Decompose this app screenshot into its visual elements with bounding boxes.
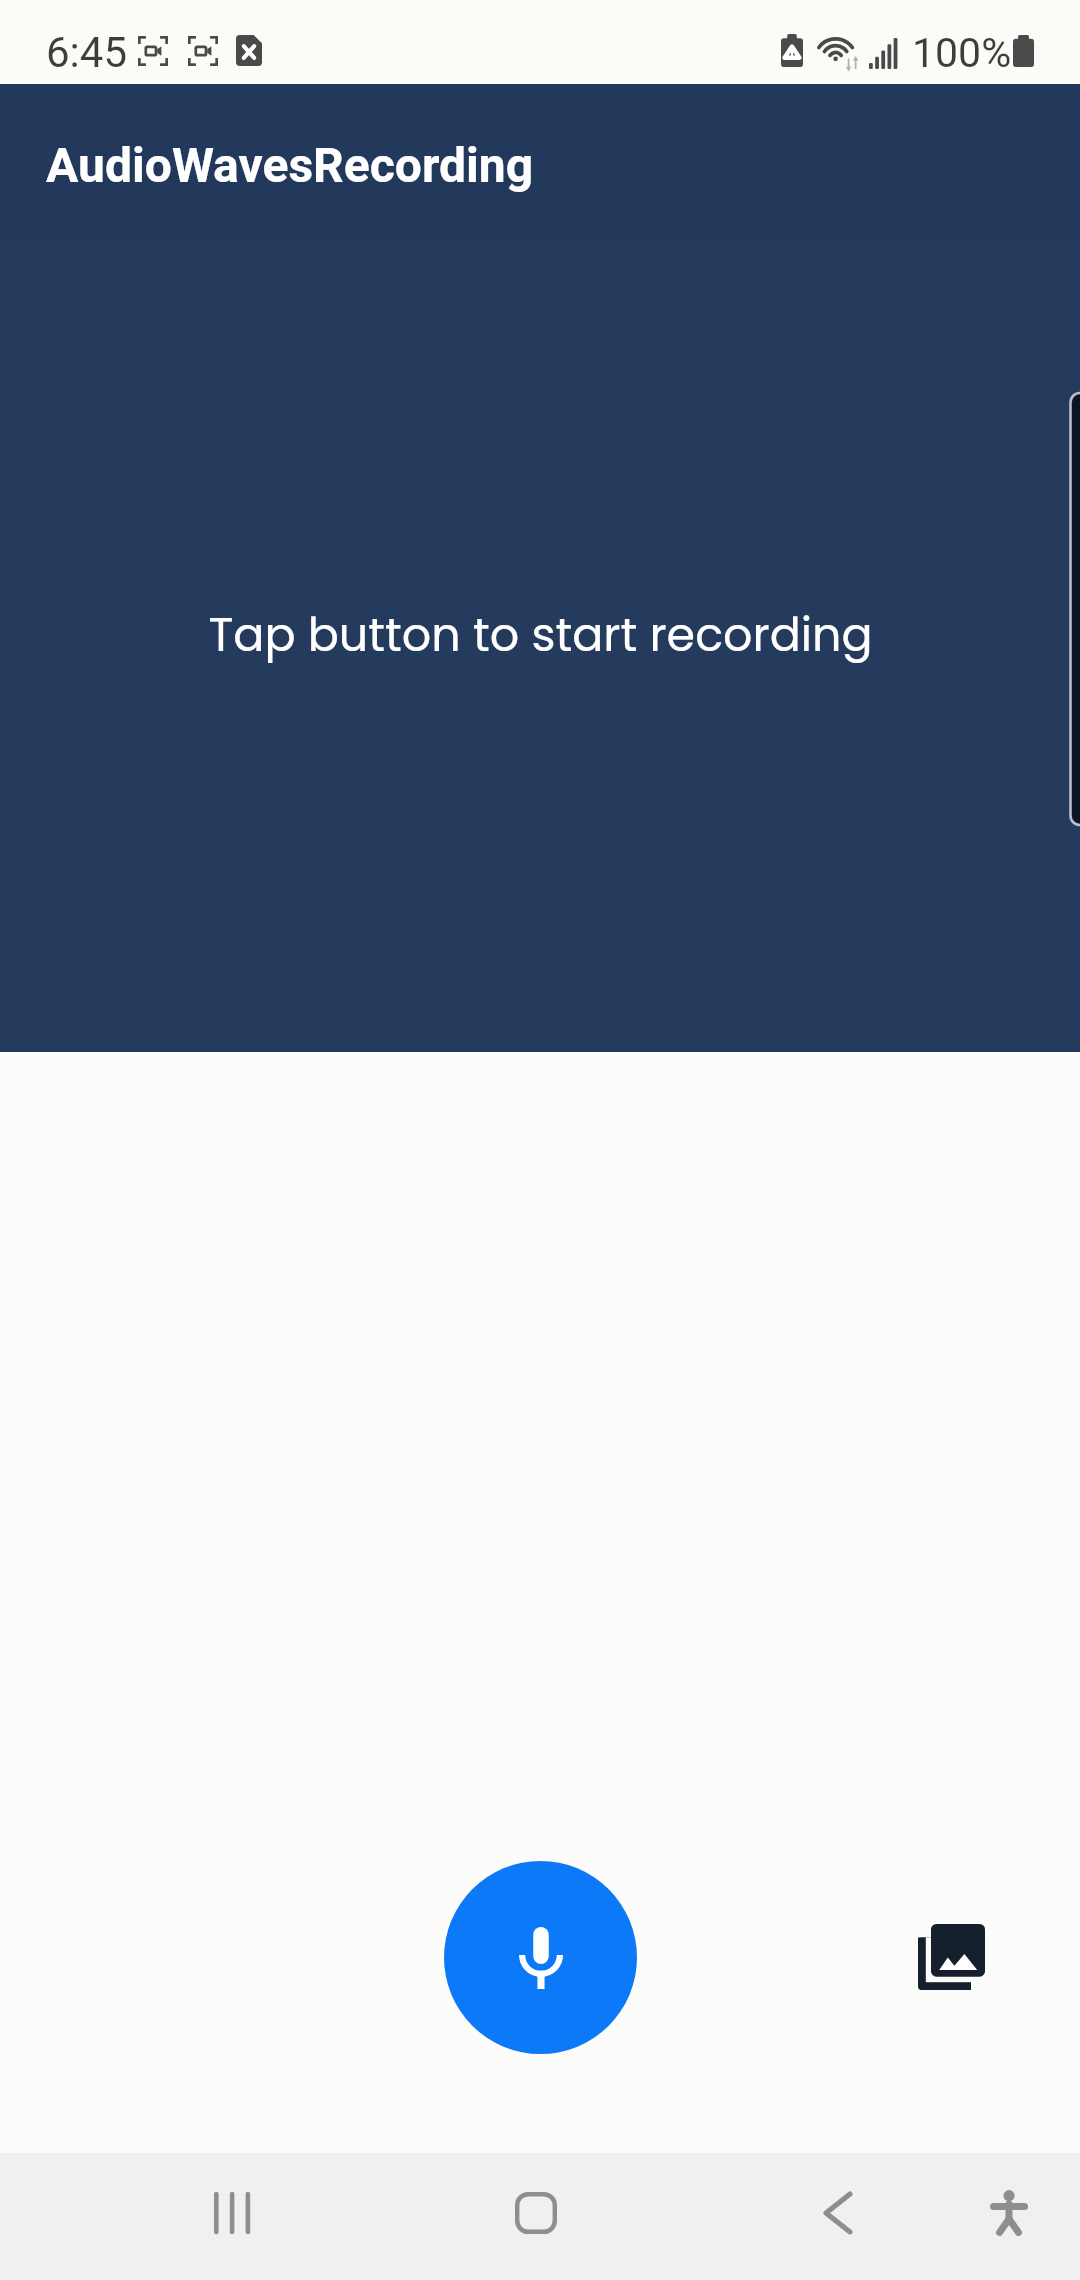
button[interactable]: Start recording	[444, 1861, 637, 2054]
staticText: AudioWavesRecording	[46, 137, 534, 193]
button[interactable]: Home	[476, 2153, 596, 2273]
button[interactable]: Recents	[173, 2153, 293, 2273]
staticText: Tap button to start recording	[208, 603, 873, 667]
button[interactable]: Back	[778, 2153, 898, 2273]
staticText: 100%	[912, 29, 1012, 77]
button[interactable]: Open gallery	[899, 1905, 1003, 2009]
button[interactable]: Accessibility	[949, 2153, 1069, 2273]
staticText: 6:45	[46, 28, 127, 77]
